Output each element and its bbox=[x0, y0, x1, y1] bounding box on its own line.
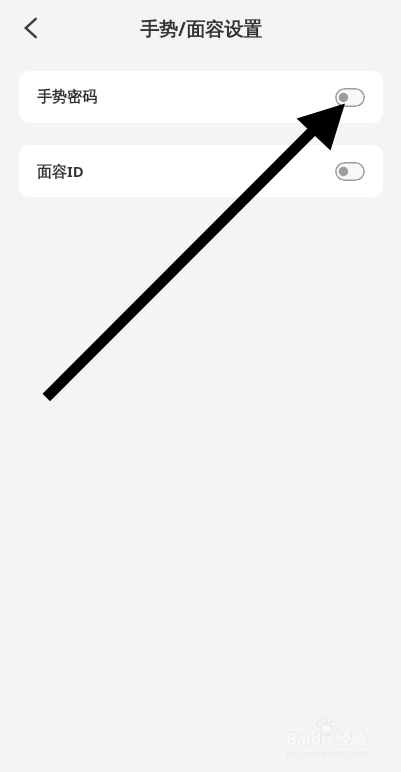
staticText: Baidu bbox=[286, 728, 332, 750]
staticText: 经验 bbox=[335, 730, 367, 750]
button[interactable]: 手势密码 bbox=[19, 71, 383, 123]
button[interactable]: Toggle bbox=[335, 88, 365, 107]
button[interactable]: 面容ID bbox=[19, 145, 383, 197]
staticText: Baidu bbox=[286, 728, 332, 750]
staticText: 手势密码 bbox=[37, 88, 97, 107]
staticText: 经验 bbox=[335, 730, 367, 750]
button[interactable]: Back bbox=[10, 7, 52, 49]
staticText: 面容ID bbox=[37, 161, 84, 181]
staticText: 手势/面容设置 bbox=[140, 16, 262, 42]
button[interactable]: Toggle bbox=[335, 162, 365, 181]
